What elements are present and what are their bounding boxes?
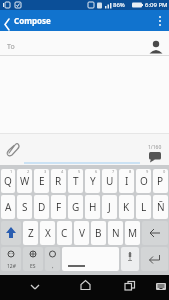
button[interactable]: X (40, 221, 55, 245)
staticText: To (7, 42, 15, 52)
button[interactable]: C (57, 221, 72, 245)
button[interactable]: Z (23, 221, 38, 245)
staticText: E (39, 174, 45, 188)
button[interactable] (62, 247, 119, 271)
staticText: S (22, 200, 28, 214)
staticText: 9 (146, 169, 149, 174)
staticText: 0 (163, 169, 166, 174)
staticText: , (52, 262, 54, 270)
staticText: I (125, 174, 129, 188)
button[interactable]: P (153, 169, 168, 193)
button[interactable]: A (1, 195, 15, 219)
button[interactable]: Compose (0, 10, 51, 31)
staticText: O (140, 174, 148, 188)
staticText: W (20, 174, 30, 188)
staticText: Ñ (157, 200, 165, 214)
staticText: Compose (14, 15, 51, 26)
staticText: T (73, 174, 79, 188)
staticText: X (45, 226, 51, 240)
staticText: C (61, 226, 68, 240)
button[interactable]: S (17, 195, 32, 219)
staticText: K (123, 200, 130, 214)
button[interactable]: To (0, 31, 169, 55)
staticText: Z (28, 226, 34, 240)
button[interactable] (147, 151, 163, 164)
staticText: F (56, 200, 62, 214)
button[interactable]: L (136, 195, 151, 219)
staticText: P (157, 174, 164, 188)
staticText: 6:09 PM (145, 1, 168, 9)
button[interactable]: 12# (1, 247, 21, 271)
button[interactable]: Q (1, 169, 15, 193)
staticText: 5 (78, 169, 81, 174)
button[interactable]: H (85, 195, 100, 219)
staticText: 1 (10, 169, 13, 174)
staticText: U (106, 174, 114, 188)
button[interactable] (5, 141, 21, 157)
staticText: 86% (113, 1, 125, 9)
button[interactable]: , (45, 247, 60, 271)
button[interactable] (141, 247, 168, 271)
button[interactable]: D (34, 195, 49, 219)
button[interactable]: N (108, 221, 123, 245)
staticText: ES (30, 263, 36, 270)
button[interactable]: I (119, 169, 134, 193)
button[interactable]: E (34, 169, 49, 193)
staticText: 12# (7, 263, 16, 270)
staticText: R (55, 174, 62, 188)
button[interactable] (155, 14, 169, 28)
button[interactable]: ES (23, 247, 43, 271)
staticText: Y (90, 174, 96, 188)
staticText: G (72, 200, 80, 214)
button[interactable]: K (119, 195, 134, 219)
button[interactable]: T (68, 169, 83, 193)
staticText: Q (4, 174, 12, 188)
staticText: J (108, 200, 111, 214)
button[interactable] (155, 282, 167, 294)
button[interactable]: V (74, 221, 89, 245)
button[interactable]: J (102, 195, 117, 219)
button[interactable]: Ñ (153, 195, 168, 219)
button[interactable]: G (68, 195, 83, 219)
staticText: L (141, 200, 147, 214)
button[interactable]: O (136, 169, 151, 193)
button[interactable]: Y (85, 169, 100, 193)
button[interactable] (121, 247, 139, 271)
button[interactable] (124, 280, 136, 292)
button[interactable]: M (125, 221, 140, 245)
staticText: 6 (95, 169, 98, 174)
staticText: H (89, 200, 97, 214)
button[interactable]: B (91, 221, 106, 245)
staticText: A (5, 200, 12, 214)
staticText: 2 (27, 169, 30, 174)
staticText: N (112, 226, 120, 240)
staticText: 8 (129, 169, 132, 174)
button[interactable] (79, 279, 92, 292)
staticText: M (128, 226, 138, 240)
button[interactable]: F (51, 195, 66, 219)
button[interactable]: R (51, 169, 66, 193)
staticText: 1/160 (148, 144, 162, 151)
button[interactable] (1, 221, 21, 245)
staticText: D (38, 200, 46, 214)
staticText: 7 (112, 169, 115, 174)
staticText: 3 (44, 169, 47, 174)
button[interactable] (29, 281, 41, 293)
staticText: V (79, 226, 85, 240)
staticText: B (95, 226, 102, 240)
button[interactable] (142, 221, 168, 245)
button[interactable]: W (17, 169, 32, 193)
button[interactable]: U (102, 169, 117, 193)
staticText: 4 (61, 169, 64, 174)
